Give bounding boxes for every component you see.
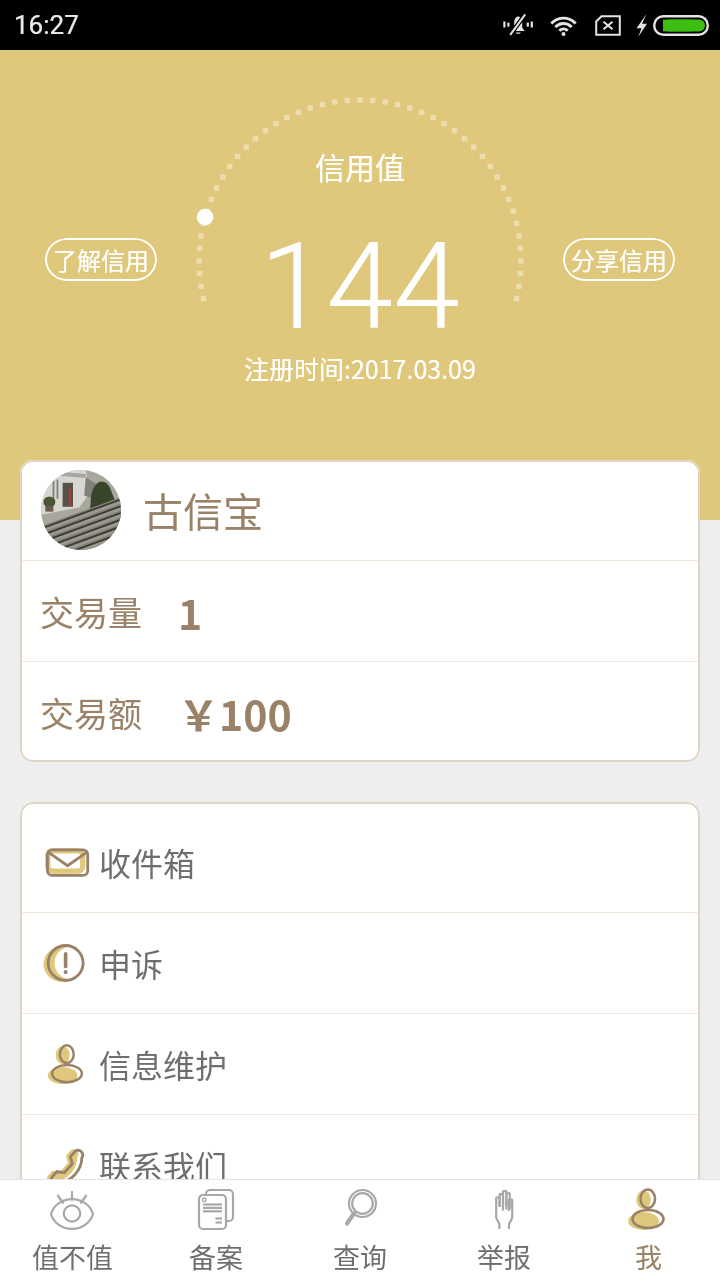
staticText: 信用值 bbox=[315, 144, 405, 187]
button[interactable]: 备案 bbox=[144, 1180, 288, 1280]
staticText: 144 bbox=[260, 217, 460, 358]
button[interactable]: 我 bbox=[576, 1180, 720, 1280]
staticText: 收件箱 bbox=[99, 839, 196, 885]
staticText: 值不值 bbox=[32, 1237, 113, 1276]
button[interactable]: 古信宝 bbox=[20, 460, 700, 560]
button[interactable]: 收件箱 bbox=[20, 812, 700, 912]
staticText: 分享信用 bbox=[571, 242, 667, 277]
staticText: 备案 bbox=[189, 1237, 243, 1276]
button[interactable]: 查询 bbox=[288, 1180, 432, 1280]
staticText: 交易量 bbox=[40, 587, 142, 636]
button[interactable]: 举报 bbox=[432, 1180, 576, 1280]
staticText: 申诉 bbox=[99, 940, 164, 986]
staticText: 古信宝 bbox=[143, 481, 263, 539]
button[interactable]: 交易额 bbox=[20, 662, 700, 762]
staticText: 了解信用 bbox=[53, 242, 149, 277]
button[interactable]: 联系我们 bbox=[20, 1115, 700, 1179]
staticText: 举报 bbox=[477, 1237, 531, 1276]
staticText: 1 bbox=[178, 582, 203, 641]
staticText: 16:27 bbox=[14, 10, 79, 40]
button[interactable]: 值不值 bbox=[0, 1180, 144, 1280]
button[interactable]: 信息维护 bbox=[20, 1014, 700, 1114]
staticText: 查询 bbox=[333, 1237, 387, 1276]
button[interactable]: 申诉 bbox=[20, 913, 700, 1013]
staticText: ￥100 bbox=[178, 683, 292, 742]
button[interactable]: 分享信用 bbox=[563, 238, 675, 281]
button[interactable]: 了解信用 bbox=[45, 238, 157, 281]
button[interactable]: 交易量 bbox=[20, 561, 700, 661]
staticText: 联系我们 bbox=[99, 1142, 228, 1179]
staticText: 交易额 bbox=[40, 688, 142, 737]
staticText: 我 bbox=[635, 1237, 662, 1276]
staticText: 注册时间:2017.03.09 bbox=[244, 350, 476, 386]
staticText: 信息维护 bbox=[99, 1041, 228, 1087]
